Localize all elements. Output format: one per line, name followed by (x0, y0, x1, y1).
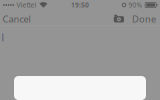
staticText: Viettel (16, 1, 36, 9)
button[interactable]: Done (127, 10, 160, 25)
staticText: 19:50 (71, 1, 89, 9)
staticText: 90% (128, 1, 142, 9)
staticText: Done (132, 13, 156, 25)
button[interactable]: Cancel (0, 10, 35, 25)
staticText: Cancel (2, 13, 30, 25)
button[interactable]: Camera (111, 10, 127, 25)
